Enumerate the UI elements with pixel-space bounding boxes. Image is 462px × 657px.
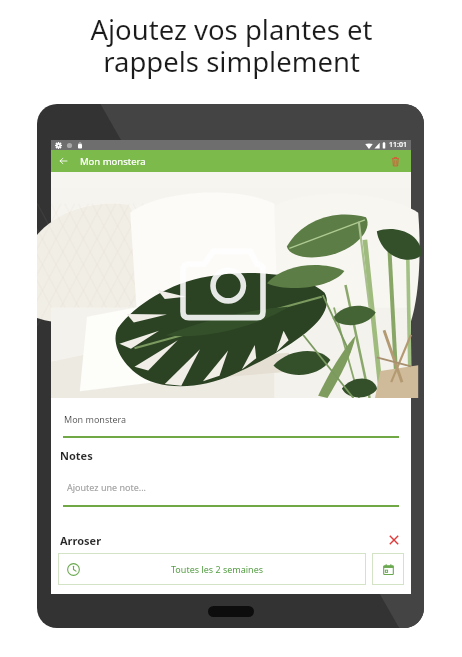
- staticText: Arroser: [60, 533, 102, 548]
- button[interactable]: Retour: [51, 150, 75, 172]
- button[interactable]: Ajouter une photo: [51, 172, 411, 398]
- staticText: Toutes les 2 semaines: [171, 563, 264, 575]
- button[interactable]: Toutes les 2 semaines: [58, 553, 366, 585]
- button[interactable]: Choisir une date: [372, 553, 404, 585]
- staticText: Mon monstera: [80, 155, 146, 168]
- staticText: Ajoutez vos plantes et rappels simplemen…: [90, 11, 373, 80]
- staticText: Mon monstera: [64, 413, 127, 425]
- button[interactable]: Supprimer le rappel: [386, 532, 402, 548]
- staticText: Ajoutez une note...: [67, 481, 146, 493]
- button[interactable]: Supprimer: [383, 150, 407, 172]
- staticText: 11:01: [389, 140, 407, 150]
- staticText: Notes: [60, 448, 93, 463]
